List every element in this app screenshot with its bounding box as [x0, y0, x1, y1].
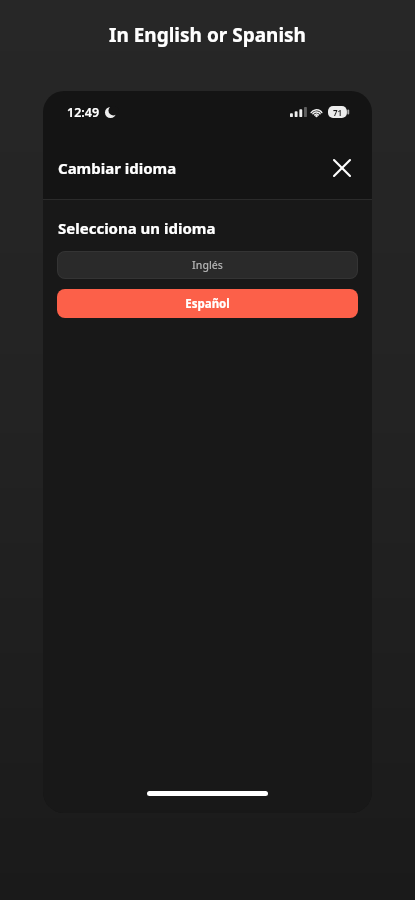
- staticText: Español: [185, 296, 230, 312]
- button[interactable]: Close: [322, 148, 362, 188]
- staticText: Inglés: [192, 258, 223, 272]
- button[interactable]: Español: [57, 289, 358, 318]
- staticText: Selecciona un idioma: [58, 218, 216, 238]
- staticText: 71: [333, 107, 343, 118]
- button[interactable]: Inglés: [57, 251, 358, 279]
- staticText: In English or Spanish: [109, 22, 306, 48]
- staticText: Cambiar idioma: [58, 158, 177, 178]
- staticText: 12:49: [67, 104, 100, 121]
